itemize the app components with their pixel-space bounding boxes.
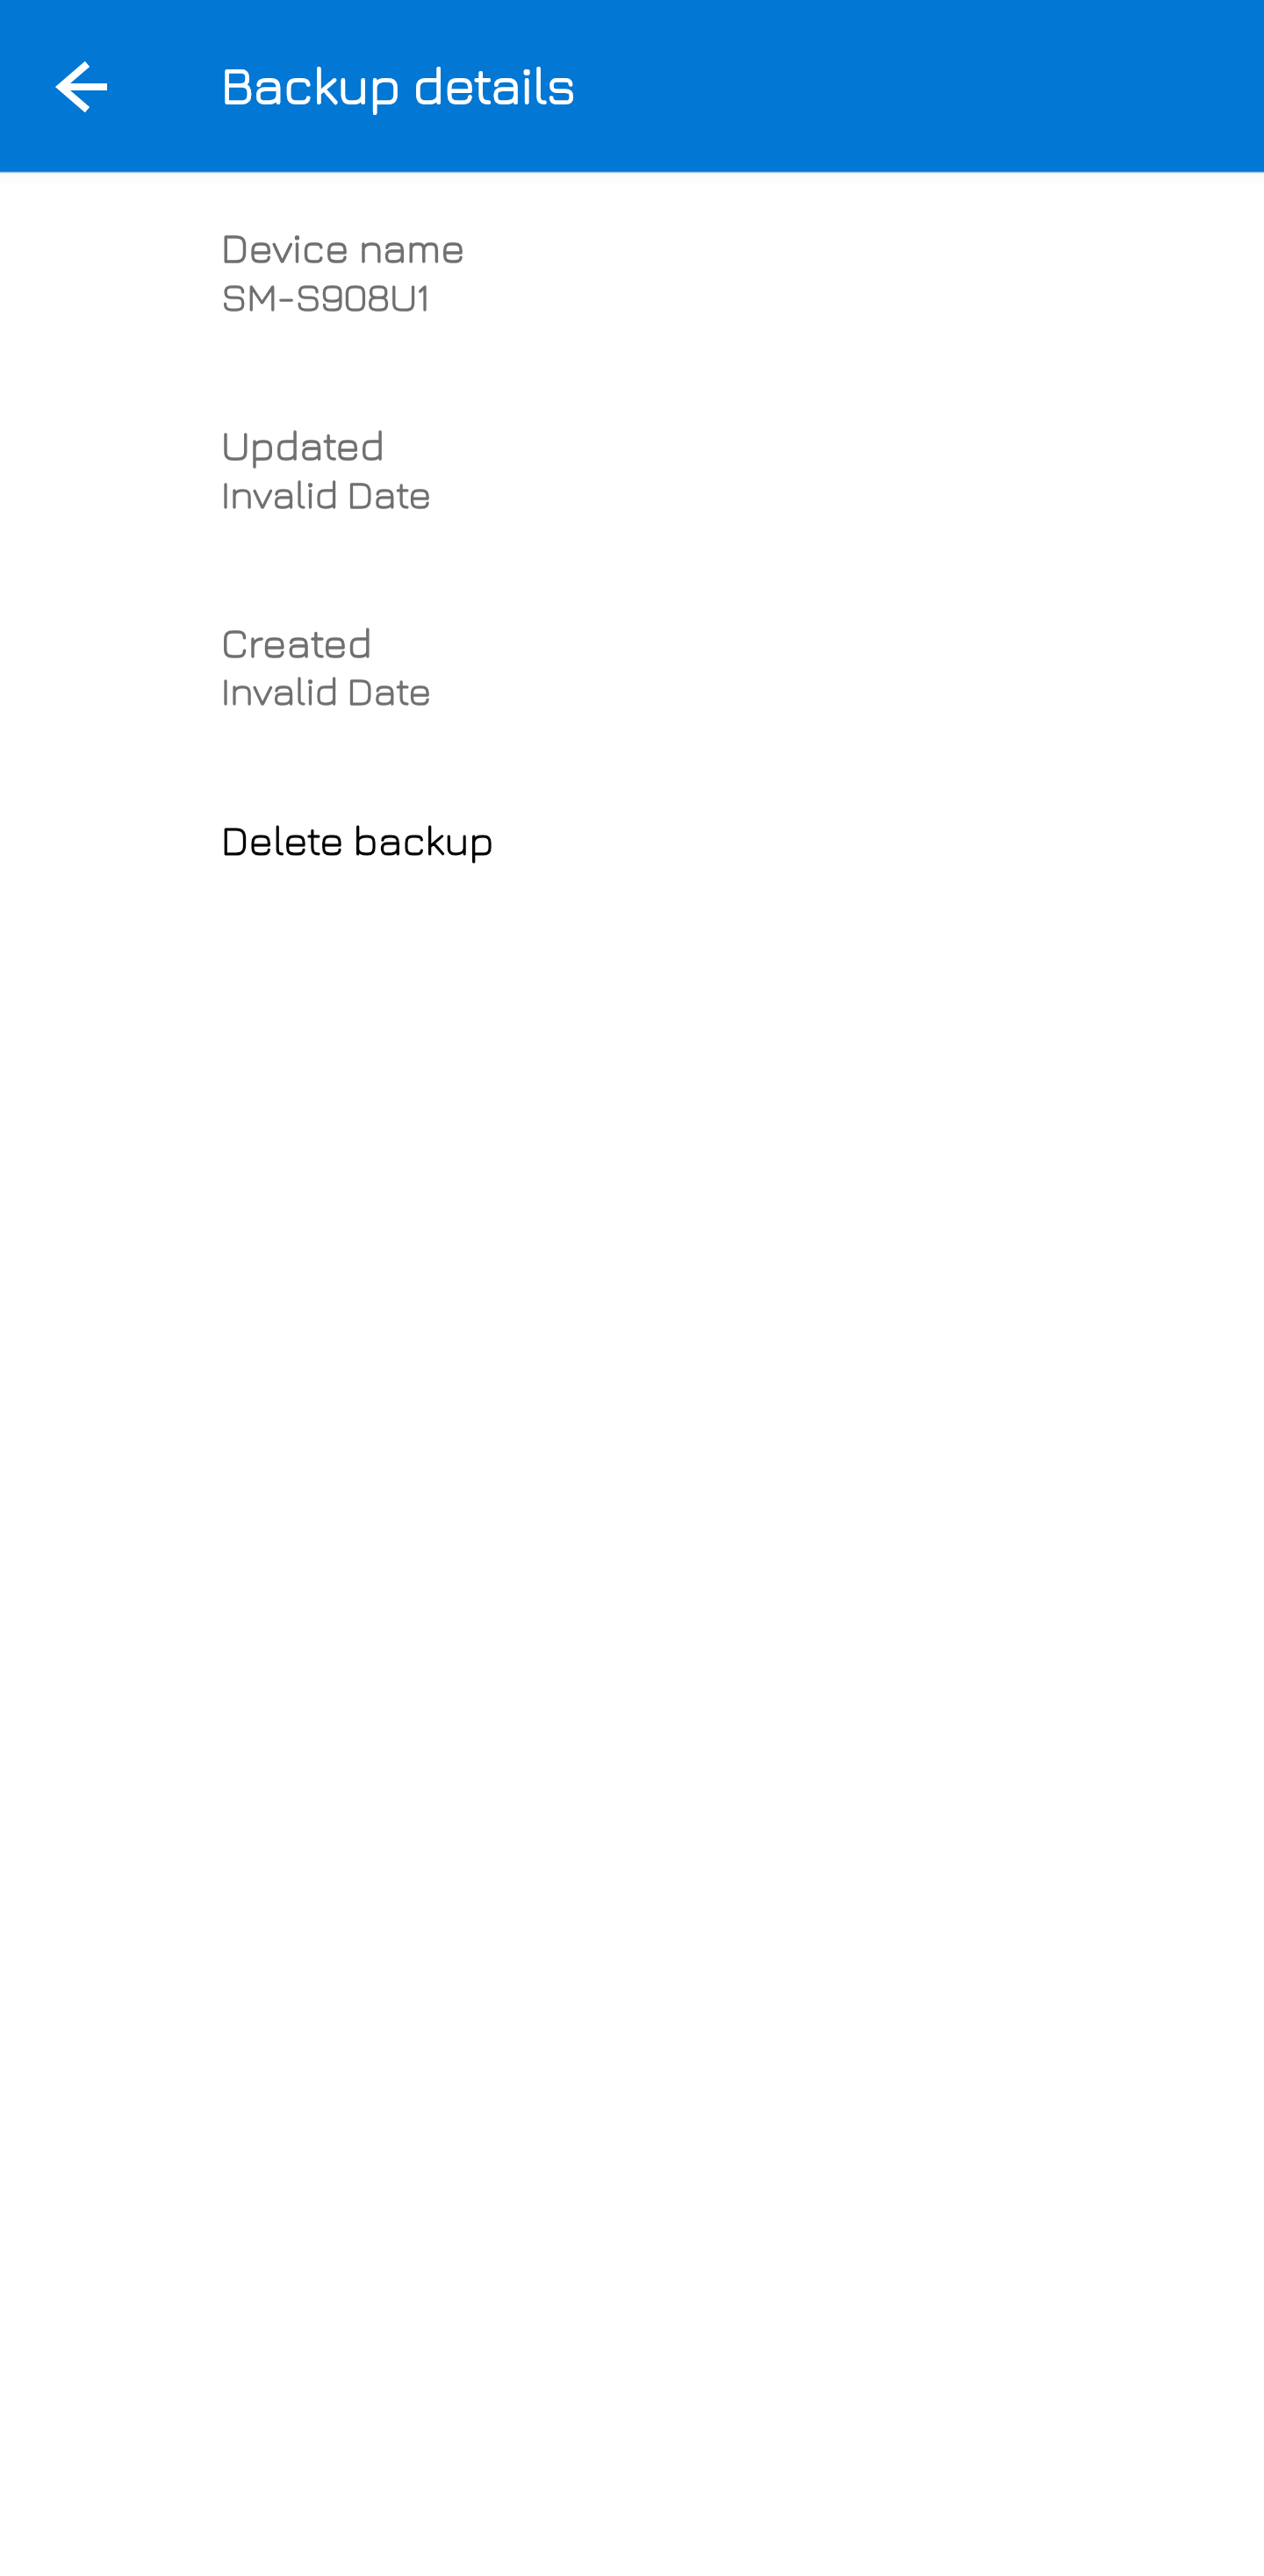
staticText: Updated — [221, 420, 384, 470]
staticText: Invalid Date — [221, 667, 432, 714]
staticText: Delete backup — [221, 815, 494, 865]
staticText: Invalid Date — [221, 470, 432, 517]
staticText: Device name — [221, 223, 465, 272]
staticText: Created — [221, 618, 372, 667]
button[interactable]: Back — [32, 35, 135, 139]
staticText: Backup details — [221, 53, 576, 115]
staticText: SM-S908U1 — [221, 273, 430, 319]
button[interactable]: Delete backup — [200, 798, 515, 882]
